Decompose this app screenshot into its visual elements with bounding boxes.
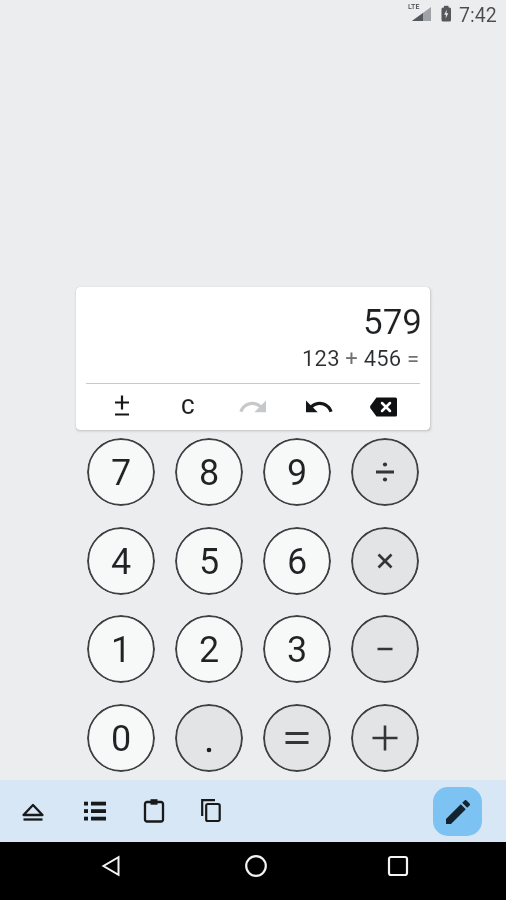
staticText: 7 bbox=[111, 452, 132, 494]
button[interactable] bbox=[351, 438, 419, 506]
button[interactable] bbox=[351, 704, 419, 772]
button[interactable]: 1 bbox=[87, 615, 155, 683]
button[interactable] bbox=[134, 791, 174, 831]
staticText: 6 bbox=[287, 541, 308, 583]
button[interactable] bbox=[376, 844, 420, 888]
staticText: 9 bbox=[287, 452, 308, 494]
staticText: 2 bbox=[199, 629, 220, 671]
staticText: 123 + 456 = bbox=[302, 346, 420, 372]
button[interactable]: 7 bbox=[87, 438, 155, 506]
button[interactable]: 9 bbox=[263, 438, 331, 506]
button[interactable] bbox=[433, 787, 482, 836]
button[interactable] bbox=[234, 387, 274, 427]
button[interactable] bbox=[175, 704, 243, 772]
staticText: 8 bbox=[199, 452, 220, 494]
staticText: C bbox=[181, 395, 195, 420]
staticText: 7:42 bbox=[459, 4, 497, 27]
button[interactable] bbox=[75, 791, 115, 831]
staticText: 0 bbox=[111, 718, 132, 760]
button[interactable] bbox=[363, 387, 403, 427]
button[interactable]: 8 bbox=[175, 438, 243, 506]
button[interactable] bbox=[13, 791, 53, 831]
button[interactable]: 5 bbox=[175, 527, 243, 595]
button[interactable]: 3 bbox=[263, 615, 331, 683]
staticText: 1 bbox=[111, 629, 132, 671]
button[interactable]: 6 bbox=[263, 527, 331, 595]
button[interactable] bbox=[351, 615, 419, 683]
button[interactable] bbox=[263, 704, 331, 772]
button[interactable]: 2 bbox=[175, 615, 243, 683]
button[interactable] bbox=[234, 844, 278, 888]
staticText: 4 bbox=[111, 541, 132, 583]
staticText: LTE bbox=[408, 3, 420, 11]
button[interactable] bbox=[191, 791, 231, 831]
staticText: 3 bbox=[287, 629, 308, 671]
button[interactable]: 0 bbox=[87, 704, 155, 772]
button[interactable] bbox=[300, 387, 340, 427]
button[interactable] bbox=[351, 527, 419, 595]
staticText: 5 bbox=[199, 541, 220, 583]
button[interactable] bbox=[102, 387, 142, 427]
button[interactable]: 4 bbox=[87, 527, 155, 595]
staticText: 579 bbox=[363, 302, 423, 343]
button[interactable]: C bbox=[168, 387, 208, 427]
button[interactable] bbox=[91, 844, 135, 888]
